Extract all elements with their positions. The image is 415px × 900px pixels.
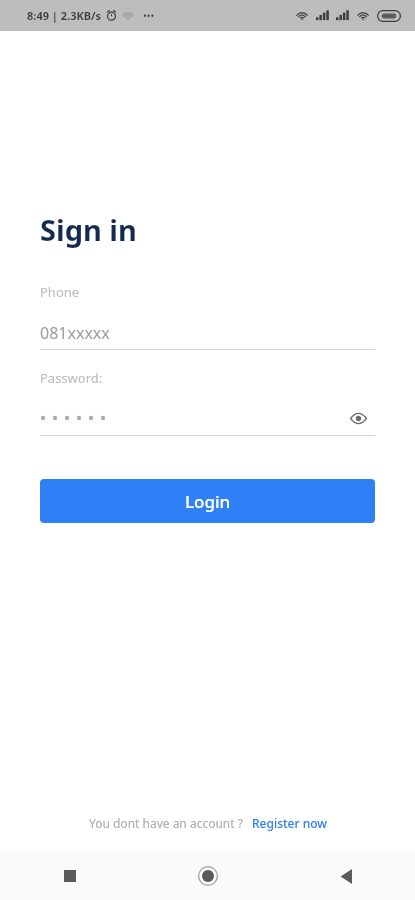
- button[interactable]: Recent apps: [0, 852, 139, 900]
- button[interactable]: [40, 401, 341, 435]
- button[interactable]: Back: [277, 852, 415, 900]
- button[interactable]: Register now: [252, 815, 327, 831]
- staticText: Phone: [40, 283, 80, 301]
- staticText: Register now: [252, 815, 327, 831]
- button[interactable]: Show password: [341, 401, 375, 435]
- staticText: •••: [143, 9, 155, 23]
- staticText: Login: [185, 490, 231, 513]
- staticText: Sign in: [40, 210, 137, 249]
- button[interactable]: 081xxxxx: [40, 317, 375, 349]
- staticText: Password:: [40, 369, 103, 387]
- button[interactable]: Home: [139, 852, 277, 900]
- button[interactable]: Login: [40, 479, 375, 523]
- staticText: 081xxxxx: [40, 322, 110, 344]
- staticText: You dont have an account ?: [89, 815, 243, 831]
- staticText: 8:49 | 2.3KB/s: [27, 8, 102, 23]
